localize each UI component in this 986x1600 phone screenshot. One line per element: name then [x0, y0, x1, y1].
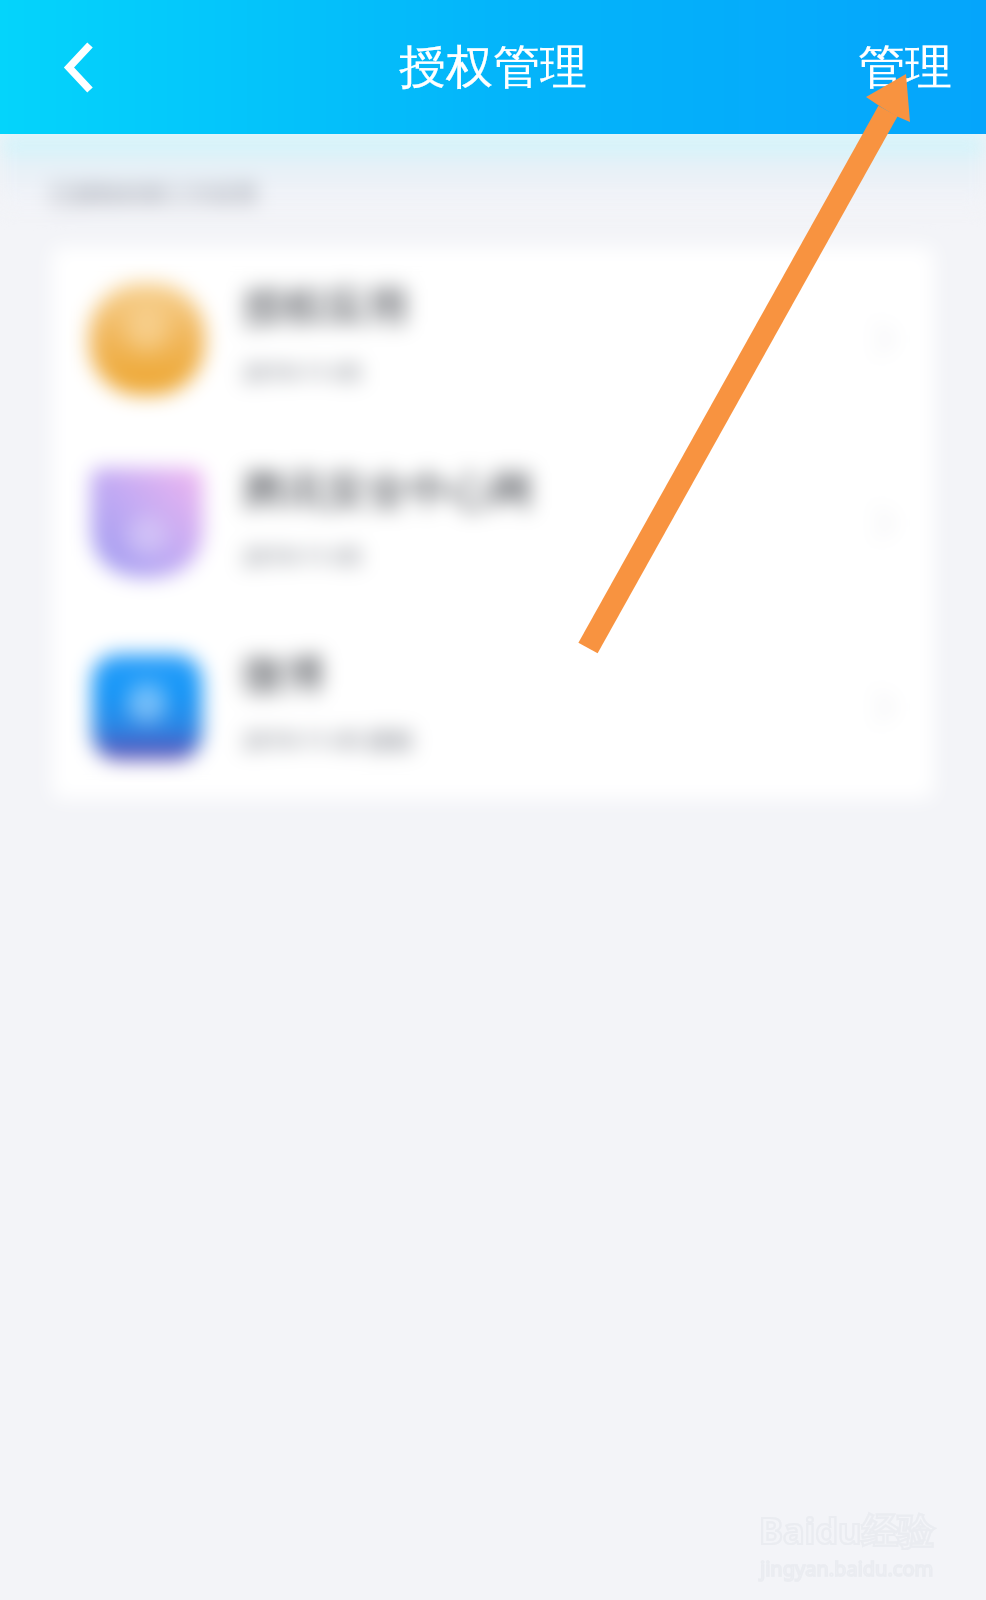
staticText: 管理: [858, 38, 952, 97]
button[interactable]: 微博: [52, 615, 934, 799]
staticText: Baidu经验: [759, 1506, 934, 1555]
staticText: 2019-11-05 授权: [242, 723, 414, 756]
staticText: 微博: [242, 649, 325, 702]
staticText: 腾讯安全中心网: [242, 465, 533, 518]
staticText: 已授权的第三方应用: [50, 180, 257, 209]
button[interactable]: Back: [36, 24, 122, 110]
staticText: 授权应用: [242, 281, 408, 334]
button[interactable]: 授权应用: [52, 247, 934, 431]
staticText: 授权管理: [399, 38, 587, 97]
staticText: 2019-11-05: [242, 539, 362, 572]
staticText: 2019-11-05: [242, 355, 362, 388]
button[interactable]: 管理: [830, 22, 986, 113]
staticText: jingyan.baidu.com: [760, 1555, 934, 1582]
button[interactable]: 腾讯安全中心网: [52, 431, 934, 615]
